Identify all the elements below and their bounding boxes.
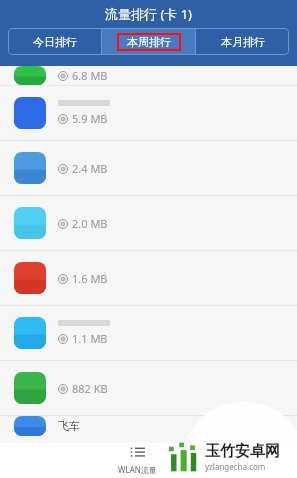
button[interactable]: 飞车 [0,416,297,436]
button[interactable]: WLAN流量 [118,446,157,475]
staticText: 1.6 MB [72,271,108,286]
staticText: WLAN流量 [118,464,157,475]
button[interactable]: 5.9 MB [0,86,297,140]
staticText: 882 KB [72,381,108,396]
staticText: 今日排行 [33,35,77,49]
staticText: 飞车 [58,419,80,433]
staticText: 6.8 MB [72,68,108,83]
button[interactable]: 本周排行 [102,28,195,55]
button[interactable]: 6.8 MB [0,66,297,85]
button[interactable]: 今日排行 [8,28,101,55]
staticText: yzlangecha.com [205,461,266,472]
staticText: 玉竹安卓网 [205,442,280,461]
staticText: 5.9 MB [72,111,108,126]
button[interactable]: 1.1 MB [0,306,297,360]
button[interactable]: 882 KB [0,361,297,415]
button[interactable]: 2.4 MB [0,141,297,195]
staticText: 本月排行 [221,35,265,49]
button[interactable]: 本月排行 [196,28,289,55]
staticText: 流量排行 (卡 1) [105,5,192,23]
staticText: 本周排行 [127,35,171,49]
button[interactable]: 1.6 MB [0,251,297,305]
staticText: 2.4 MB [72,161,108,176]
button[interactable]: 2.0 MB [0,196,297,250]
staticText: 1.1 MB [72,331,108,346]
staticText: 2.0 MB [72,216,108,231]
